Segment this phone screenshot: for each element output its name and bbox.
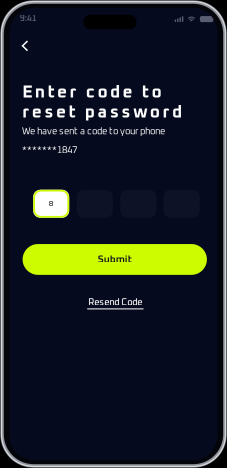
staticText: Enter code to [22, 84, 161, 101]
staticText: reset password [22, 104, 182, 121]
staticText: Submit [98, 254, 132, 264]
button[interactable]: Submit [23, 244, 207, 275]
staticText: We have sent a code to your phone [22, 127, 165, 136]
staticText: 9:41 [20, 14, 37, 23]
staticText: 8 [49, 200, 54, 208]
button[interactable]: Resend Code [84, 296, 146, 311]
staticText: *******1847 [22, 146, 77, 155]
button[interactable]: Back [13, 34, 37, 57]
staticText: Resend Code [88, 298, 142, 307]
